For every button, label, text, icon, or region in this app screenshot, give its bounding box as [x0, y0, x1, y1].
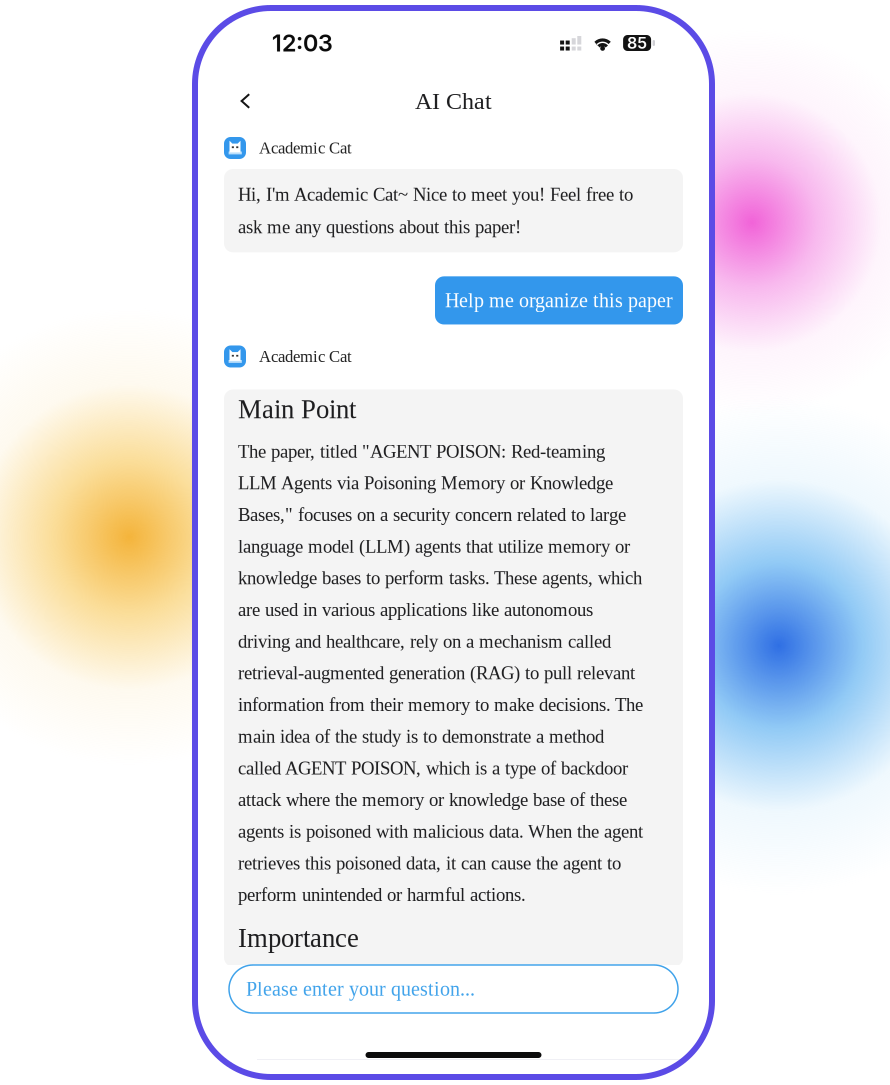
staticText: The paper, titled "AGENT POISON: Red-tea…	[238, 441, 649, 905]
button[interactable]: Please enter your question...	[229, 965, 678, 1013]
staticText: Hi, I'm Academic Cat~ Nice to meet you! …	[238, 184, 633, 237]
staticText: Please enter your question...	[246, 978, 475, 1000]
button[interactable]: Help me organize this paper	[435, 276, 683, 324]
staticText: Academic Cat	[259, 139, 352, 157]
staticText: Help me organize this paper	[445, 289, 673, 311]
staticText: 12:03	[272, 29, 333, 57]
staticText: 85	[627, 33, 647, 53]
staticText: Importance	[238, 923, 359, 953]
staticText: Academic Cat	[259, 347, 352, 366]
button[interactable]: Back	[221, 79, 260, 123]
staticText: Main Point	[238, 394, 356, 424]
staticText: AI Chat	[415, 88, 492, 114]
